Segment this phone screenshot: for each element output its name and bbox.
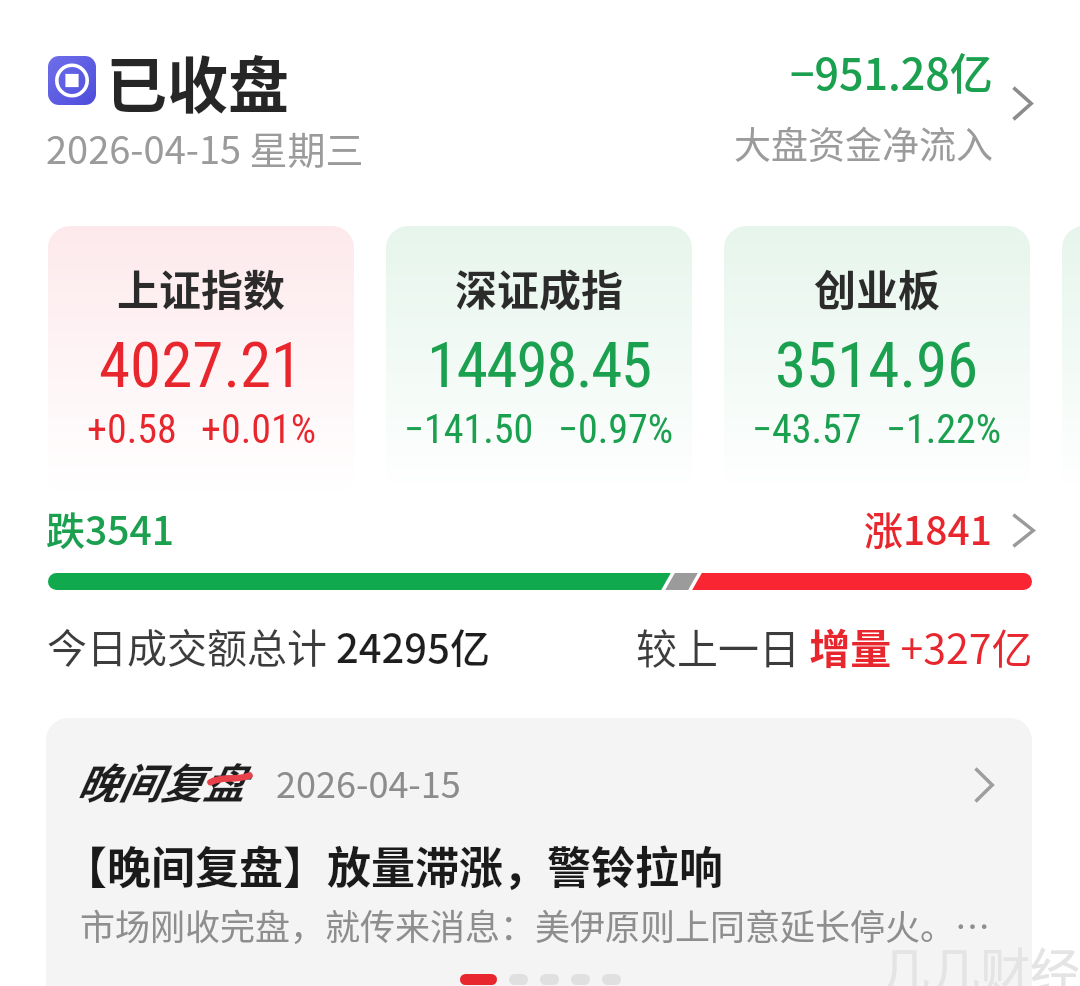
- staticText: 晚间复盘: [76, 750, 245, 811]
- staticText: +0.58: [87, 406, 177, 453]
- staticText: 较上一日 增量 +327亿: [636, 616, 1033, 675]
- button[interactable]: 创业板: [724, 226, 1030, 497]
- staticText: 2026-04-15 星期三: [46, 120, 364, 175]
- staticText: 4027.21: [99, 329, 303, 403]
- staticText: +0.01%: [201, 406, 316, 453]
- staticText: 创业板: [814, 257, 941, 318]
- staticText: −951.28亿: [790, 40, 993, 102]
- other: Capital flow detail: [1013, 87, 1033, 120]
- staticText: 14498.45: [427, 329, 651, 403]
- button[interactable]: Page 5 of 5: [602, 974, 621, 985]
- button[interactable]: Page 2 of 5: [509, 974, 528, 985]
- staticText: −141.50: [404, 406, 534, 453]
- button[interactable]: −951.28亿: [690, 40, 1040, 170]
- other: Open article: [975, 768, 994, 802]
- staticText: 市场刚收完盘，就传来消息：美伊原则上同意延长停火。…: [80, 899, 1010, 950]
- staticText: 已收盘: [106, 37, 290, 125]
- button[interactable]: 跌3541: [0, 500, 1080, 596]
- staticText: 2026-04-15: [276, 756, 461, 808]
- button[interactable]: Page 3 of 5: [540, 974, 559, 985]
- button[interactable]: 上证指数: [48, 226, 354, 497]
- staticText: 3514.96: [775, 329, 979, 403]
- button[interactable]: 深证成指: [386, 226, 692, 497]
- button[interactable]: Page 1 of 5: [460, 974, 497, 985]
- staticText: 深证成指: [455, 257, 624, 318]
- staticText: 几几财经: [880, 932, 1080, 986]
- staticText: 涨1841: [864, 500, 992, 556]
- staticText: −1.22%: [886, 406, 1002, 453]
- staticText: 大盘资金净流入: [734, 116, 993, 170]
- other: Rise fall detail: [1013, 514, 1035, 547]
- staticText: 【晚间复盘】放量滞涨，警铃拉响: [63, 833, 723, 897]
- staticText: 上证指数: [117, 257, 286, 318]
- staticText: 跌3541: [46, 500, 174, 556]
- button[interactable]: Page 4 of 5: [571, 974, 590, 985]
- button[interactable]: 晚间复盘: [46, 718, 1032, 986]
- staticText: −0.97%: [558, 406, 674, 453]
- button[interactable]: Market status: [48, 56, 96, 105]
- staticText: 今日成交额总计 24295亿: [47, 617, 490, 675]
- staticText: −43.57: [752, 406, 862, 453]
